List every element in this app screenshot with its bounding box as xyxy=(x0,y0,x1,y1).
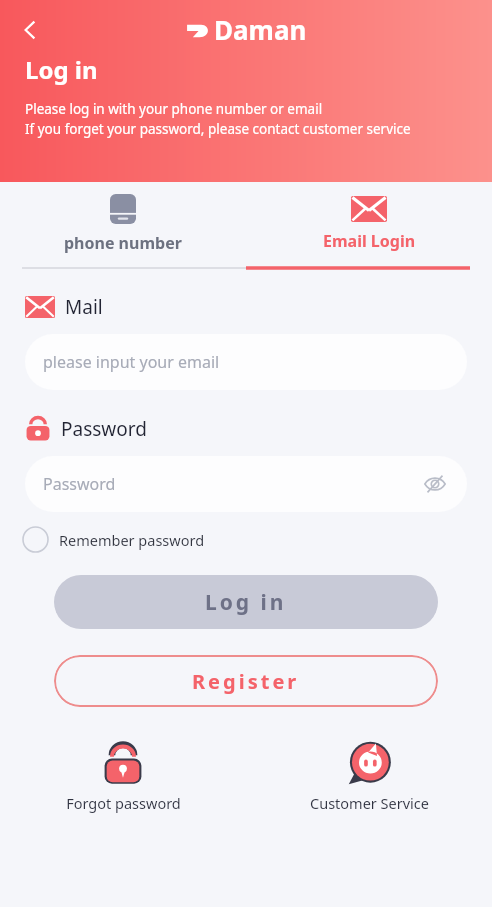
button[interactable]: Customer Service xyxy=(246,741,492,813)
button[interactable]: Remember password xyxy=(22,526,492,553)
staticText: Email Login xyxy=(323,230,416,252)
button[interactable]: Show password xyxy=(419,468,451,500)
button[interactable]: Back xyxy=(8,8,52,52)
staticText: phone number xyxy=(64,232,182,254)
staticText: Forgot password xyxy=(66,793,181,813)
button[interactable]: please input your email xyxy=(25,334,467,390)
button[interactable]: Forgot password xyxy=(0,741,246,813)
button[interactable]: Email Login xyxy=(246,182,492,272)
button[interactable]: Log in xyxy=(54,575,438,629)
staticText: Please log in with your phone number or … xyxy=(25,100,323,118)
button[interactable]: phone number xyxy=(0,182,246,272)
button[interactable]: Register xyxy=(54,655,438,707)
staticText: Password xyxy=(61,416,147,442)
staticText: Customer Service xyxy=(310,793,429,813)
staticText: please input your email xyxy=(43,351,220,373)
staticText: Log in xyxy=(205,588,287,617)
staticText: Password xyxy=(43,473,116,495)
staticText: Register xyxy=(192,668,300,695)
staticText: Log in xyxy=(25,53,98,86)
button[interactable]: Password xyxy=(25,456,467,512)
staticText: Mail xyxy=(65,294,103,320)
staticText: Remember password xyxy=(59,530,205,550)
staticText: Daman xyxy=(214,12,307,47)
staticText: If you forget your password, please cont… xyxy=(25,120,411,138)
